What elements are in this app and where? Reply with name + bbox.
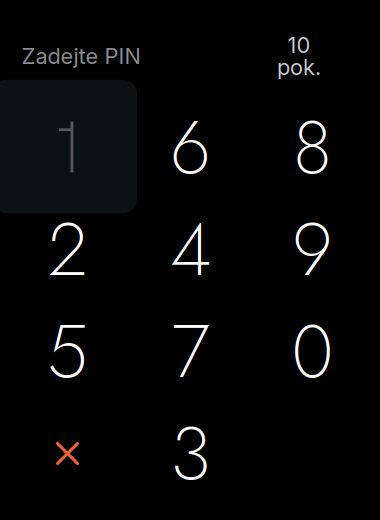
staticText: 3 [170,400,210,506]
staticText: 5 [47,298,88,404]
button[interactable]: 0 [256,303,368,399]
staticText: 0 [291,298,333,404]
staticText: 6 [170,94,211,200]
staticText: Zadejte PIN [21,43,140,69]
button[interactable]: 6 [134,99,246,195]
button[interactable]: 8 [256,99,368,195]
button[interactable]: 9 [256,201,368,297]
button[interactable]: Delete [11,405,123,501]
staticText: 4 [170,196,211,302]
button[interactable]: 5 [11,303,123,399]
staticText: 7 [171,298,209,404]
button[interactable]: 7 [134,303,246,399]
staticText: 2 [48,196,87,302]
button[interactable]: 1 [0,80,137,213]
staticText: pok. [277,54,321,80]
staticText: 9 [292,196,333,302]
button[interactable]: 2 [11,201,123,297]
staticText: 8 [293,94,332,200]
staticText: 10 [287,32,310,58]
button[interactable]: 3 [134,405,246,501]
button[interactable]: 4 [134,201,246,297]
